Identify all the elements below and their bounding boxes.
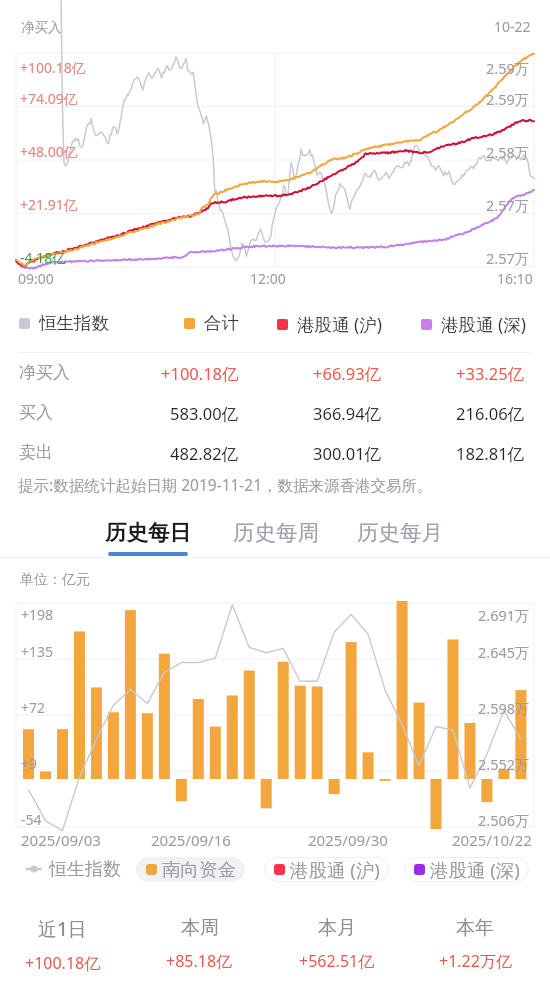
staticText: -54 — [21, 810, 42, 829]
staticText: 本周 — [181, 916, 219, 940]
staticText: 历史每月 — [357, 519, 443, 546]
staticText: 2.59万 — [486, 58, 530, 78]
staticText: +1.22万亿 — [439, 950, 512, 972]
staticText: 净买入 — [21, 19, 62, 36]
staticText: 港股通 (深) — [441, 312, 527, 336]
staticText: 583.00亿 — [170, 402, 239, 425]
staticText: 提示:数据统计起始日期 2019-11-21，数据来源香港交易所。 — [18, 474, 433, 495]
staticText: +100.18亿 — [25, 952, 101, 974]
staticText: +198 — [21, 605, 54, 624]
staticText: 2.58万 — [486, 142, 530, 162]
staticText: 2.691万 — [478, 605, 530, 625]
button[interactable]: 港股通 (深) — [404, 857, 529, 882]
staticText: 182.81亿 — [456, 442, 525, 465]
staticText: 历史每周 — [233, 519, 319, 546]
staticText: 净买入 — [19, 362, 70, 383]
staticText: 09:00 — [18, 269, 54, 288]
staticText: 恒生指数 — [49, 858, 121, 881]
staticText: 216.06亿 — [456, 402, 525, 425]
button[interactable]: 本周 — [131, 916, 268, 972]
button[interactable]: 本月 — [268, 916, 406, 972]
staticText: 10-22 — [494, 17, 531, 36]
staticText: 300.01亿 — [313, 442, 382, 465]
staticText: +33.25亿 — [456, 362, 525, 385]
staticText: 2025/09/16 — [151, 830, 231, 850]
staticText: 南向资金 — [162, 858, 236, 881]
staticText: +100.18亿 — [20, 58, 86, 77]
button[interactable]: 本年 — [406, 916, 544, 972]
staticText: 2.57万 — [486, 195, 530, 215]
staticText: -4.18亿 — [20, 248, 67, 267]
button[interactable]: 近1日 — [0, 916, 131, 974]
staticText: 366.94亿 — [313, 402, 382, 425]
staticText: 本月 — [318, 916, 356, 940]
staticText: 2.506万 — [478, 810, 530, 830]
button[interactable]: 恒生指数 — [19, 312, 109, 334]
staticText: 2.552万 — [478, 754, 530, 774]
button[interactable]: 南向资金 — [136, 857, 245, 882]
staticText: 历史每日 — [105, 519, 191, 546]
button[interactable]: 港股通 (沪) — [277, 312, 383, 336]
button[interactable]: 历史每月 — [357, 519, 443, 546]
staticText: +74.09亿 — [20, 89, 78, 108]
button[interactable]: 港股通 (沪) — [264, 857, 389, 882]
staticText: +100.18亿 — [161, 362, 239, 385]
staticText: +21.91亿 — [20, 195, 78, 214]
button[interactable]: 合计 — [184, 312, 239, 334]
staticText: +9 — [21, 754, 38, 773]
button[interactable]: 港股通 (深) — [421, 312, 527, 336]
staticText: +135 — [21, 642, 54, 661]
button[interactable]: 历史每日 — [105, 519, 191, 556]
staticText: 恒生指数 — [39, 312, 109, 334]
staticText: 2025/09/30 — [308, 830, 388, 850]
staticText: 港股通 (沪) — [290, 857, 380, 882]
staticText: 单位：亿元 — [20, 571, 90, 589]
staticText: 482.82亿 — [170, 442, 239, 465]
staticText: 近1日 — [38, 916, 87, 942]
staticText: 合计 — [204, 312, 239, 334]
staticText: 2.598万 — [478, 698, 530, 718]
staticText: 2.645万 — [478, 642, 530, 662]
staticText: +48.00亿 — [20, 142, 78, 161]
staticText: +562.51亿 — [299, 950, 375, 972]
button[interactable]: 历史每周 — [233, 519, 319, 546]
staticText: 12:00 — [250, 269, 286, 288]
button[interactable]: 恒生指数 — [26, 856, 121, 882]
staticText: 买入 — [19, 402, 53, 423]
staticText: 16:10 — [497, 269, 533, 288]
staticText: +72 — [21, 698, 46, 717]
staticText: +85.18亿 — [166, 950, 233, 972]
staticText: +66.93亿 — [313, 362, 382, 385]
staticText: 2.59万 — [486, 89, 530, 109]
staticText: 本年 — [456, 916, 494, 940]
staticText: 2025/09/03 — [21, 830, 101, 850]
staticText: 卖出 — [19, 442, 53, 463]
staticText: 港股通 (沪) — [297, 312, 383, 336]
staticText: 港股通 (深) — [430, 857, 520, 882]
staticText: 2.57万 — [486, 248, 530, 268]
staticText: 2025/10/22 — [452, 830, 532, 850]
